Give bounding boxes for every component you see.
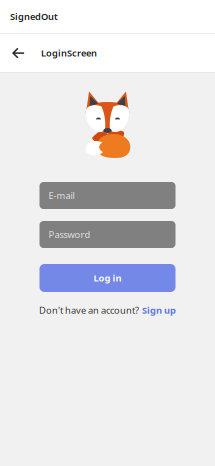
staticText: SignedOut [10, 10, 58, 23]
staticText: LoginScreen [41, 47, 97, 59]
staticText: E-mail [48, 189, 74, 202]
staticText: Don't have an account? [39, 304, 139, 316]
staticText: Password [48, 228, 90, 241]
button[interactable]: Back [5, 34, 31, 72]
button[interactable]: Log in [39, 264, 175, 292]
staticText: Sign up [142, 304, 176, 316]
button[interactable]: Sign up [142, 304, 176, 316]
staticText: Log in [93, 272, 121, 284]
